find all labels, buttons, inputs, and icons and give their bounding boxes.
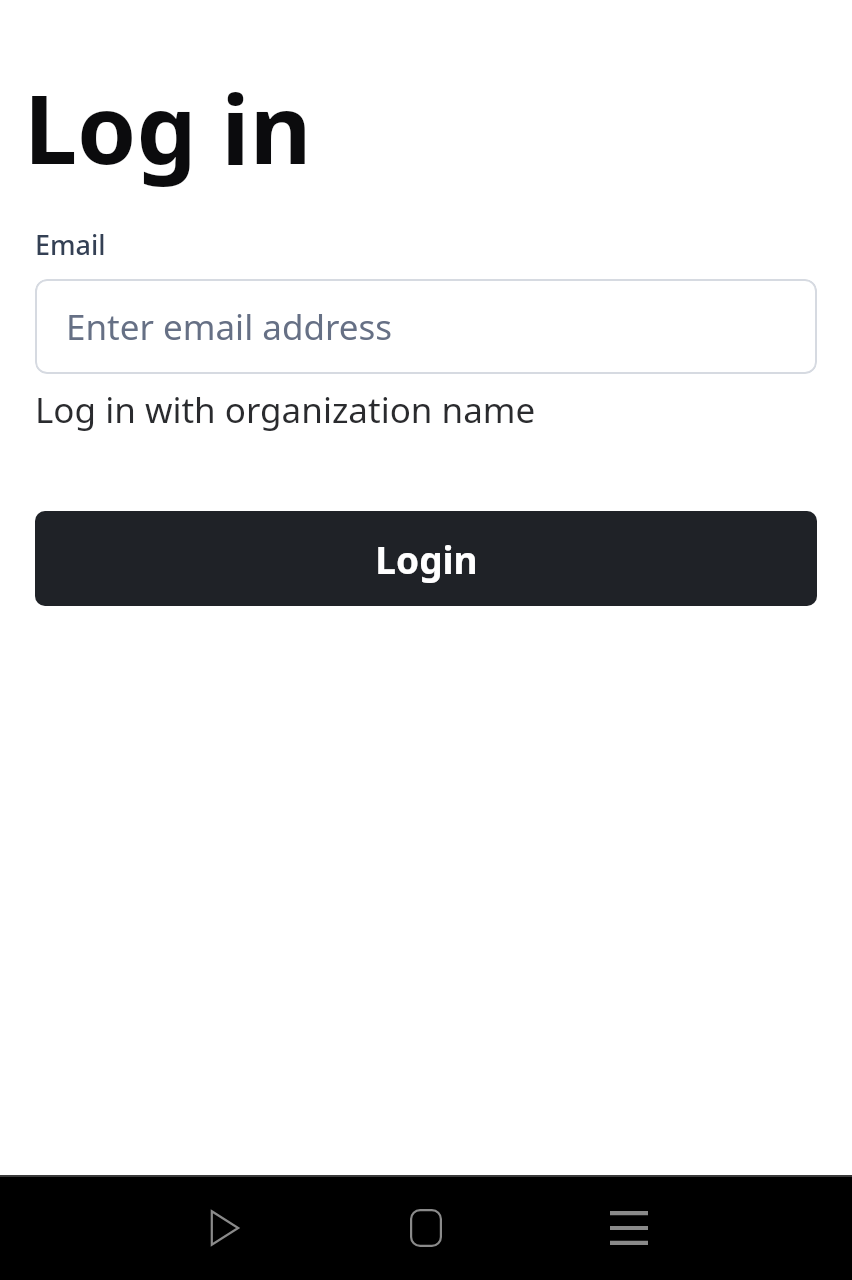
staticText: Log in with organization name (35, 386, 536, 434)
button[interactable]: Home (384, 1186, 468, 1270)
button[interactable]: Recent apps (587, 1186, 671, 1270)
button[interactable]: Login (35, 511, 817, 606)
button[interactable]: Log in with organization name (35, 386, 536, 434)
staticText: Log in (24, 62, 312, 191)
staticText: Login (375, 534, 478, 584)
button[interactable]: Back (181, 1186, 265, 1270)
button[interactable]: Enter email address (35, 279, 817, 374)
staticText: Enter email address (66, 303, 392, 351)
staticText: Email (35, 226, 106, 263)
